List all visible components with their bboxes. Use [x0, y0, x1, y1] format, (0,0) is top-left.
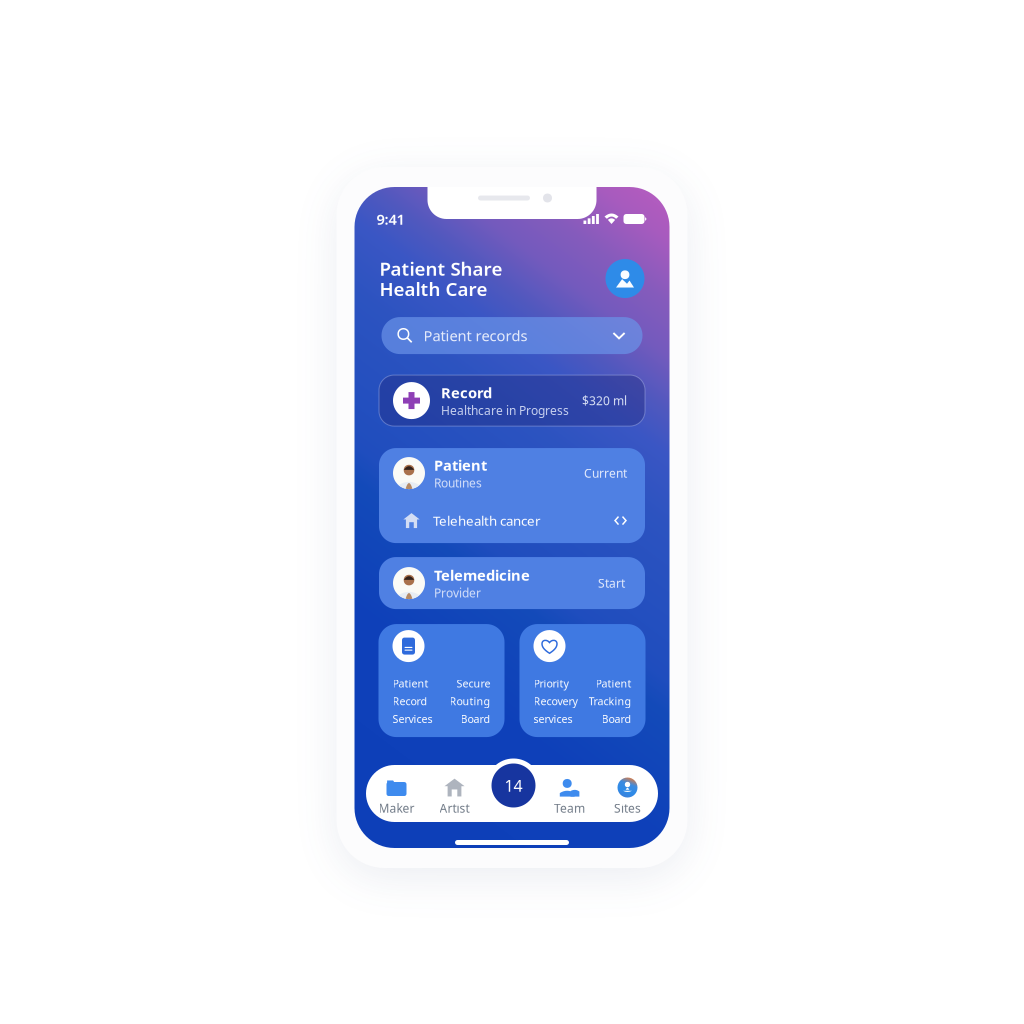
- staticText: Provider: [434, 585, 481, 601]
- button[interactable]: Sites: [598, 765, 656, 822]
- button[interactable]: Add: [486, 758, 540, 812]
- staticText: Artist: [439, 800, 469, 816]
- staticText: Patient: [392, 676, 428, 690]
- staticText: Patient records: [423, 326, 527, 345]
- staticText: $320 ml: [582, 393, 627, 408]
- button[interactable]: Telemedicine: [379, 557, 645, 609]
- button[interactable]: Patient: [378, 624, 504, 737]
- staticText: Board: [460, 712, 490, 726]
- staticText: Record: [392, 694, 427, 708]
- button[interactable]: Priority: [519, 624, 645, 737]
- staticText: Services: [392, 712, 432, 726]
- staticText: Priority: [533, 676, 568, 690]
- staticText: Telemedicine: [434, 565, 530, 585]
- staticText: Current: [584, 465, 627, 481]
- button[interactable]: Telehealth cancer: [379, 498, 645, 543]
- staticText: Start: [598, 575, 625, 591]
- button[interactable]: Record: [379, 375, 645, 426]
- staticText: Health Care: [379, 276, 487, 301]
- button[interactable]: Maker: [367, 765, 425, 822]
- staticText: Board: [601, 712, 631, 726]
- staticText: Maker: [378, 800, 414, 816]
- staticText: Recovery: [533, 694, 577, 708]
- button[interactable]: Team: [540, 765, 598, 822]
- button[interactable]: Patient: [379, 448, 645, 498]
- staticText: Routing: [449, 694, 490, 708]
- staticText: Patient: [595, 676, 631, 690]
- staticText: Team: [554, 800, 585, 816]
- staticText: Healthcare in Progress: [441, 402, 569, 418]
- staticText: Sites: [614, 800, 641, 816]
- staticText: Telehealth cancer: [433, 512, 541, 529]
- staticText: Secure: [456, 676, 490, 690]
- button[interactable]: Artist: [425, 765, 483, 822]
- staticText: 14: [504, 775, 522, 796]
- staticText: services: [533, 712, 572, 726]
- staticText: 9:41: [376, 209, 404, 229]
- button[interactable]: Patient records: [381, 317, 642, 354]
- staticText: Record: [441, 383, 492, 402]
- button[interactable]: Profile: [605, 259, 644, 298]
- staticText: Tracking: [588, 694, 631, 708]
- staticText: Patient: [434, 455, 487, 475]
- staticText: Patient Share: [379, 256, 502, 281]
- staticText: Routines: [434, 475, 482, 491]
